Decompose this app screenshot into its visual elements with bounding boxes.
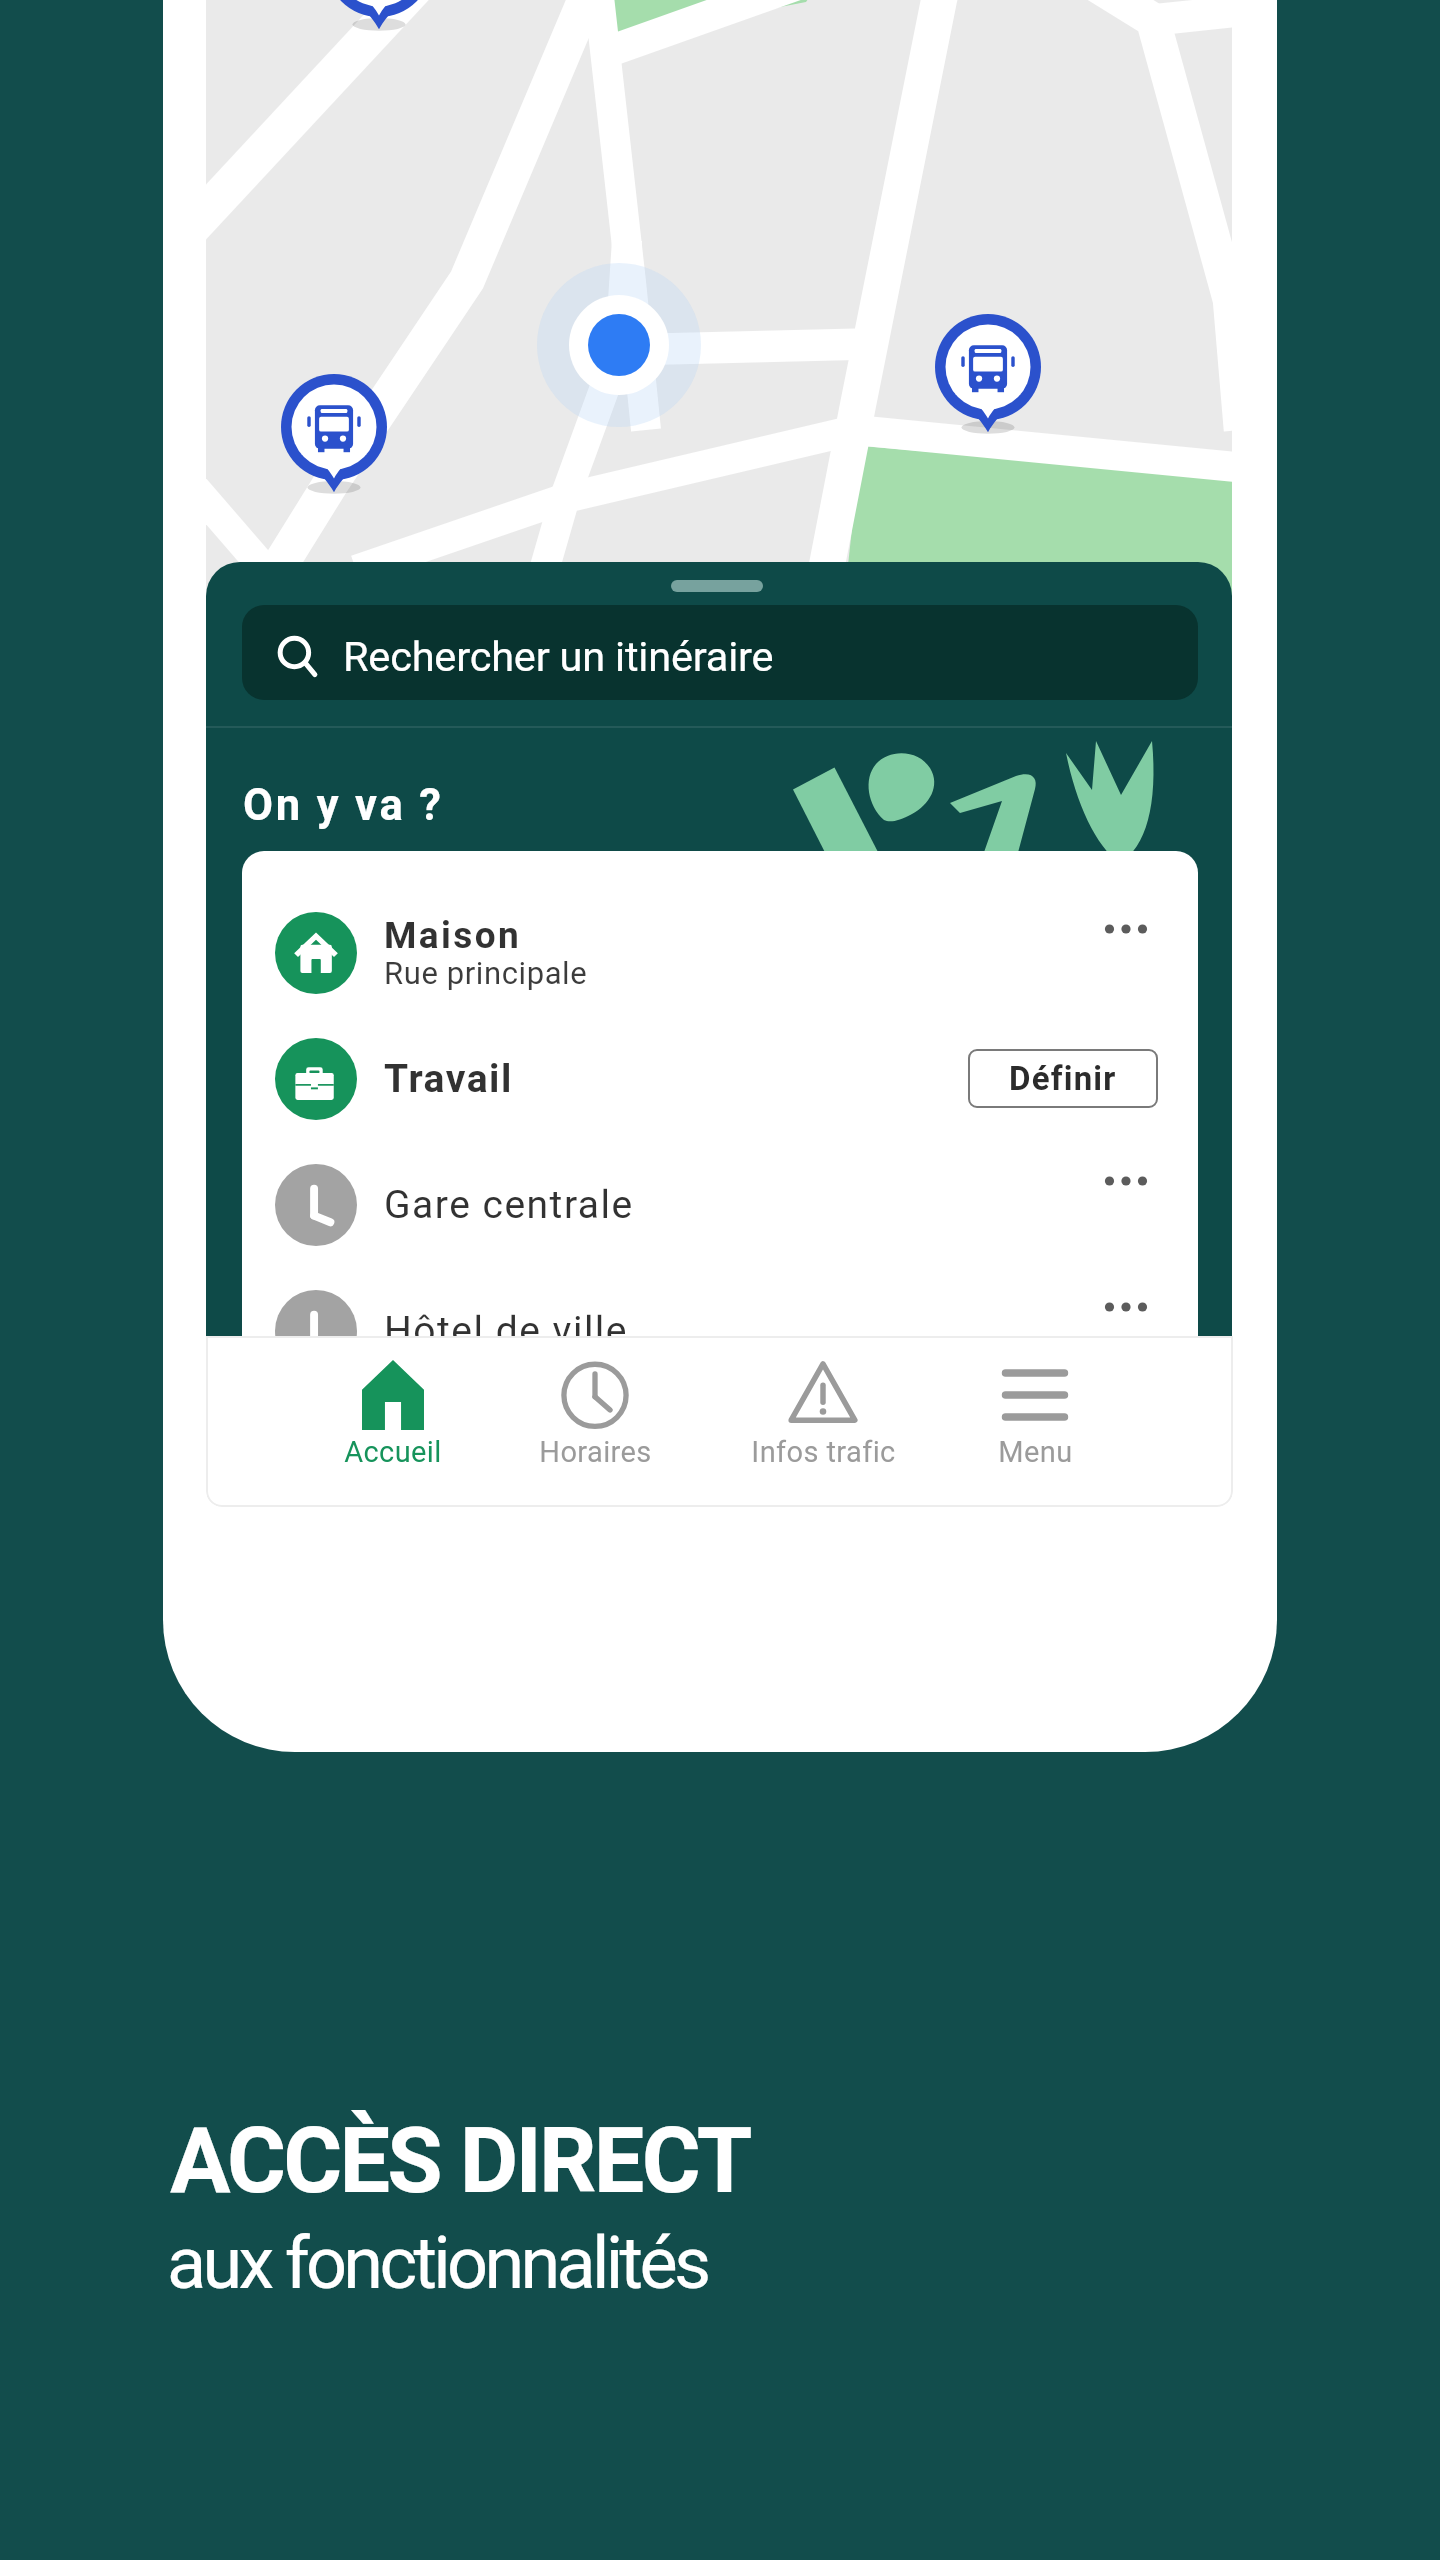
button[interactable]: Rechercher un itinéraire bbox=[242, 605, 1198, 700]
button[interactable]: Menu bbox=[925, 1336, 1145, 1507]
button[interactable]: Horaires bbox=[485, 1336, 705, 1507]
staticText: aux fonctionnalités bbox=[167, 2221, 708, 2305]
staticText: Maison bbox=[384, 914, 522, 957]
staticText: Définir bbox=[1009, 1059, 1117, 1098]
staticText: Hôtel de ville bbox=[384, 1308, 629, 1338]
staticText: ACCÈS DIRECT bbox=[170, 2109, 750, 2214]
button[interactable]: More options bbox=[1086, 889, 1166, 969]
button[interactable]: Définir bbox=[968, 1049, 1158, 1108]
button[interactable]: Infos trafic bbox=[713, 1336, 933, 1507]
staticText: Accueil bbox=[344, 1435, 442, 1469]
staticText: Travail bbox=[384, 1056, 513, 1102]
staticText: Rue principale bbox=[384, 955, 588, 991]
staticText: Horaires bbox=[539, 1435, 652, 1469]
staticText: Rechercher un itinéraire bbox=[343, 632, 774, 681]
button[interactable]: Accueil bbox=[283, 1336, 503, 1507]
button[interactable]: Maison bbox=[242, 889, 1198, 1015]
button[interactable]: More options bbox=[1086, 1267, 1166, 1338]
button[interactable]: Gare centrale bbox=[242, 1141, 1198, 1267]
button[interactable]: More options bbox=[1086, 1141, 1166, 1221]
button[interactable]: Travail bbox=[242, 1015, 1198, 1141]
button[interactable]: Hôtel de ville bbox=[242, 1267, 1198, 1338]
staticText: Menu bbox=[998, 1435, 1073, 1469]
staticText: Gare centrale bbox=[384, 1182, 634, 1228]
staticText: Infos trafic bbox=[751, 1435, 896, 1469]
staticText: On y va ? bbox=[243, 780, 444, 831]
